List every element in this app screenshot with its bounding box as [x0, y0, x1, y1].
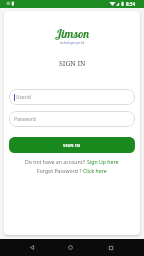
staticText: Userid [16, 94, 31, 101]
button[interactable]: Password [9, 111, 135, 127]
button[interactable]: Back [0, 239, 63, 256]
staticText: Jimson [55, 26, 89, 41]
staticText: 8:34 [126, 1, 135, 7]
button[interactable]: Home [63, 239, 78, 256]
button[interactable]: Sign Up here [87, 158, 119, 165]
button[interactable]: Userid [9, 89, 135, 105]
button[interactable]: SIGN IN [9, 137, 135, 153]
staticText: Do not have an account? [25, 158, 87, 165]
staticText: SIGN IN [63, 143, 81, 148]
staticText: technologies pvt ltd [60, 41, 84, 45]
staticText: Forgot Password ? [37, 167, 83, 174]
button[interactable]: Recent apps [78, 239, 144, 256]
staticText: Password [14, 116, 36, 123]
button[interactable]: Click here [83, 167, 107, 174]
staticText: SIGN IN [59, 59, 86, 69]
